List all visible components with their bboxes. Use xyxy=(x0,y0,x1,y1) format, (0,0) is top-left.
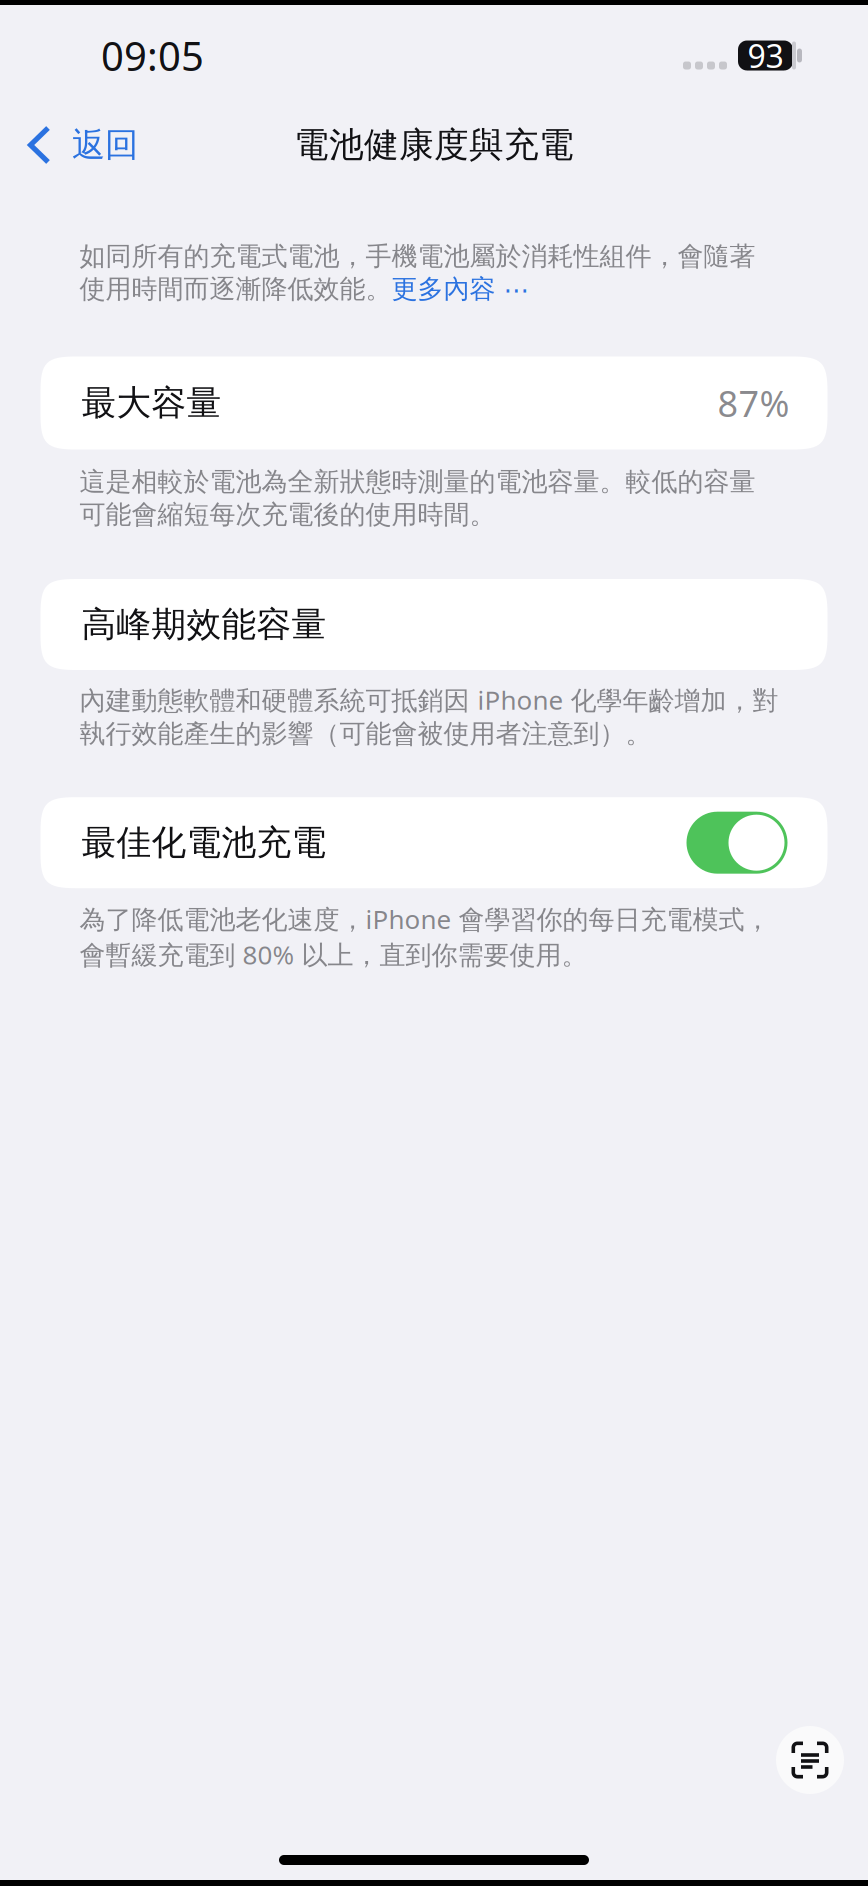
staticText: 電池健康度與充電 xyxy=(294,123,574,167)
staticText: 87% xyxy=(717,378,789,427)
staticText: 這是相較於電池為全新狀態時測量的電池容量。較低的容量 可能會縮短每次充電後的使用… xyxy=(79,465,755,531)
button[interactable]: 高峰期效能容量 xyxy=(40,579,827,670)
button[interactable]: 返回 xyxy=(0,114,154,176)
staticText: 最大容量 xyxy=(81,381,221,425)
button[interactable]: 最大容量 xyxy=(40,356,827,449)
staticText: 使用時間而逐漸降低效能。 xyxy=(79,273,391,306)
button[interactable]: Live Text xyxy=(776,1726,844,1794)
staticText: 為了降低電池老化速度，iPhone 會學習你的每日充電模式， 會暫緩充電到 80… xyxy=(79,901,770,972)
staticText: 93 xyxy=(747,34,783,77)
button[interactable]: 更多內容 ⋯ xyxy=(391,273,529,306)
staticText: 內建動態軟體和硬體系統可抵銷因 iPhone 化學年齡增加，對 執行效能產生的影… xyxy=(79,682,778,750)
staticText: 更多內容 ⋯ xyxy=(391,273,529,306)
staticText: 09:05 xyxy=(101,28,204,83)
button[interactable]: 最佳化電池充電 xyxy=(40,797,827,888)
staticText: 返回 xyxy=(72,124,138,166)
staticText: 如同所有的充電式電池，手機電池屬於消耗性組件，會隨著 xyxy=(79,240,755,273)
staticText: 高峰期效能容量 xyxy=(81,603,326,646)
staticText: 最佳化電池充電 xyxy=(81,821,326,864)
